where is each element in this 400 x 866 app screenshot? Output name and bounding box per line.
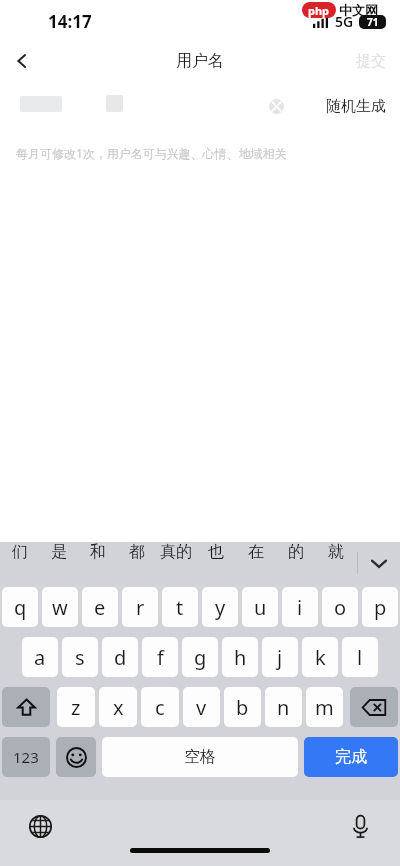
staticText: a — [34, 644, 46, 671]
staticText: q — [14, 594, 27, 621]
button[interactable]: f — [142, 637, 178, 677]
button[interactable]: Shift — [2, 687, 50, 727]
staticText: z — [71, 694, 81, 721]
staticText: r — [136, 594, 145, 621]
staticText: l — [357, 644, 363, 671]
button[interactable]: l — [342, 637, 378, 677]
staticText: p — [374, 594, 387, 621]
staticText: i — [297, 594, 303, 621]
staticText: 随机生成 — [326, 97, 386, 116]
button[interactable]: 完成 — [304, 737, 398, 777]
button[interactable]: 清除 — [263, 93, 289, 119]
button[interactable]: k — [302, 637, 338, 677]
button[interactable]: a — [22, 637, 58, 677]
staticText: 真的 — [160, 542, 192, 562]
button[interactable]: g — [182, 637, 218, 677]
button[interactable]: v — [183, 687, 220, 727]
staticText: 5G — [335, 12, 354, 31]
button[interactable]: m — [306, 687, 343, 727]
staticText: 和 — [90, 542, 106, 562]
button[interactable]: 都 — [117, 542, 156, 562]
button[interactable]: 是 — [39, 542, 78, 562]
staticText: e — [94, 594, 106, 621]
button[interactable]: z — [57, 687, 95, 727]
staticText: 也 — [208, 542, 224, 562]
staticText: y — [215, 594, 226, 621]
staticText: v — [196, 694, 207, 721]
button[interactable]: 空格 — [102, 737, 298, 777]
staticText: 中文网 — [339, 2, 378, 18]
button[interactable]: 们 — [0, 542, 39, 562]
button[interactable]: 切换输入法 — [22, 808, 58, 844]
button[interactable]: 返回 — [0, 42, 44, 80]
staticText: 是 — [51, 542, 67, 562]
staticText: h — [234, 644, 247, 671]
button[interactable]: o — [322, 587, 358, 627]
button[interactable]: t — [162, 587, 198, 627]
button[interactable]: 提交 — [356, 52, 386, 71]
staticText: f — [157, 644, 164, 671]
button[interactable]: n — [265, 687, 302, 727]
button[interactable]: p — [362, 587, 398, 627]
button[interactable]: b — [224, 687, 261, 727]
button[interactable]: q — [2, 587, 38, 627]
button[interactable]: 也 — [196, 542, 236, 562]
staticText: 71 — [367, 15, 379, 29]
staticText: s — [75, 644, 85, 671]
staticText: 14:17 — [48, 10, 92, 33]
staticText: 就 — [328, 542, 344, 562]
staticText: g — [194, 644, 207, 671]
staticText: t — [176, 594, 184, 621]
button[interactable]: 收起候选词 — [358, 542, 400, 584]
staticText: 在 — [248, 542, 264, 562]
button[interactable]: y — [202, 587, 238, 627]
button[interactable]: h — [222, 637, 258, 677]
staticText: 每月可修改1次，用户名可与兴趣、心情、地域相关 — [16, 145, 287, 161]
button[interactable]: 在 — [236, 542, 276, 562]
button[interactable]: 随机生成 — [326, 97, 386, 116]
button[interactable]: s — [62, 637, 98, 677]
staticText: 提交 — [356, 52, 386, 71]
button[interactable]: 表情 — [56, 737, 96, 777]
button[interactable]: u — [242, 587, 278, 627]
staticText: w — [52, 594, 68, 621]
staticText: 们 — [12, 542, 28, 562]
staticText: u — [254, 594, 267, 621]
button[interactable]: c — [141, 687, 179, 727]
button[interactable]: x — [99, 687, 137, 727]
staticText: 空格 — [184, 747, 216, 767]
staticText: 完成 — [335, 747, 367, 767]
button[interactable]: d — [102, 637, 138, 677]
staticText: m — [315, 694, 334, 721]
staticText: 都 — [129, 542, 145, 562]
button[interactable]: 就 — [316, 542, 356, 562]
staticText: php — [308, 3, 330, 18]
staticText: 的 — [288, 542, 304, 562]
button[interactable]: 和 — [78, 542, 117, 562]
staticText: b — [236, 694, 249, 721]
staticText: 123 — [13, 747, 39, 767]
staticText: x — [113, 694, 124, 721]
button[interactable]: 的 — [276, 542, 316, 562]
button[interactable]: i — [282, 587, 318, 627]
staticText: n — [277, 694, 290, 721]
button[interactable]: r — [122, 587, 158, 627]
staticText: j — [277, 644, 283, 671]
button[interactable]: w — [42, 587, 78, 627]
button[interactable]: 删除 — [350, 687, 398, 727]
staticText: c — [155, 694, 165, 721]
staticText: 用户名 — [176, 51, 224, 71]
button[interactable]: 语音输入 — [342, 808, 378, 844]
staticText: o — [334, 594, 347, 621]
button[interactable]: 真的 — [156, 542, 196, 562]
button[interactable]: j — [262, 637, 298, 677]
button[interactable]: e — [82, 587, 118, 627]
button[interactable]: 123 — [2, 737, 50, 777]
staticText: k — [315, 644, 326, 671]
staticText: d — [114, 644, 127, 671]
